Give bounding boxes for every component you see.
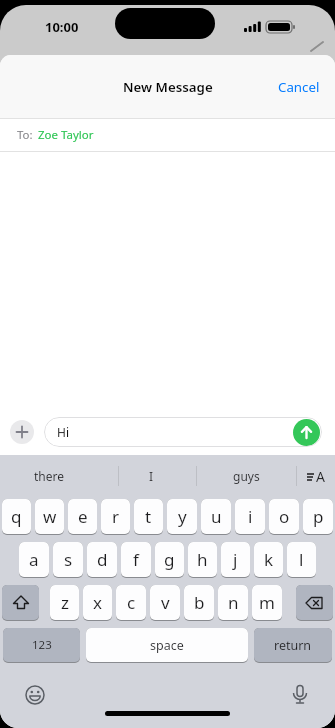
button[interactable]: Cancel (278, 55, 320, 118)
staticText: s (64, 548, 73, 571)
staticText: return (274, 637, 312, 654)
button[interactable]: l (287, 542, 316, 577)
button[interactable]: return (254, 628, 332, 662)
button[interactable]: c (116, 585, 146, 620)
staticText: i (248, 505, 253, 528)
staticText: v (161, 591, 170, 614)
staticText: 10:00 (45, 18, 79, 36)
staticText: New Message (123, 78, 213, 96)
staticText: c (127, 591, 136, 614)
staticText: o (279, 505, 290, 528)
button[interactable]: b (184, 585, 214, 620)
staticText: space (150, 637, 184, 654)
button[interactable] (2, 585, 39, 620)
button[interactable]: r (101, 499, 130, 534)
staticText: n (228, 591, 239, 614)
staticText: q (11, 505, 22, 528)
staticText: A (316, 467, 325, 486)
staticText: m (259, 591, 275, 614)
staticText: guys (233, 468, 260, 484)
button[interactable]: 123 (3, 628, 80, 662)
button[interactable]: A (297, 455, 335, 497)
staticText: e (78, 505, 88, 528)
button[interactable]: To: (0, 119, 335, 151)
staticText: w (43, 505, 57, 528)
button[interactable] (293, 419, 320, 446)
staticText: p (313, 505, 324, 528)
staticText: 123 (32, 637, 52, 653)
button[interactable]: s (53, 542, 83, 577)
button[interactable]: p (303, 499, 333, 534)
staticText: k (264, 548, 274, 571)
button[interactable]: m (252, 585, 282, 620)
button[interactable] (24, 684, 46, 706)
button[interactable]: q (2, 499, 31, 534)
button[interactable]: y (167, 499, 197, 534)
button[interactable] (296, 585, 333, 620)
button[interactable]: h (188, 542, 217, 577)
button[interactable]: u (201, 499, 231, 534)
button[interactable]: x (83, 585, 112, 620)
staticText: r (112, 505, 120, 528)
button[interactable]: guys (197, 455, 296, 497)
staticText: h (197, 548, 208, 571)
button[interactable]: e (68, 499, 97, 534)
staticText: j (233, 548, 238, 571)
button[interactable]: space (86, 628, 248, 662)
button[interactable]: i (235, 499, 265, 534)
staticText: b (194, 591, 205, 614)
staticText: Zoe Taylor (38, 127, 94, 143)
button[interactable]: t (134, 499, 163, 534)
staticText: there (34, 468, 65, 484)
button[interactable]: j (221, 542, 250, 577)
staticText: u (211, 505, 222, 528)
button[interactable]: o (269, 499, 299, 534)
button[interactable]: k (254, 542, 283, 577)
button[interactable]: Hi (44, 417, 322, 447)
button[interactable]: v (150, 585, 180, 620)
staticText: x (93, 591, 102, 614)
staticText: y (178, 505, 187, 528)
button[interactable]: z (50, 585, 79, 620)
staticText: g (164, 548, 175, 571)
staticText: To: (17, 127, 33, 143)
button[interactable]: a (19, 542, 49, 577)
staticText: f (133, 548, 139, 571)
staticText: I (149, 468, 154, 484)
staticText: a (29, 548, 39, 571)
staticText: Hi (57, 424, 69, 440)
button[interactable]: there (0, 455, 118, 497)
staticText: l (299, 548, 304, 571)
button[interactable]: w (35, 499, 64, 534)
staticText: z (61, 591, 69, 614)
button[interactable]: g (155, 542, 184, 577)
staticText: d (97, 548, 108, 571)
button[interactable] (10, 420, 34, 444)
staticText: Cancel (278, 78, 320, 96)
button[interactable]: I (119, 455, 196, 497)
button[interactable]: n (218, 585, 248, 620)
button[interactable] (289, 684, 311, 706)
button[interactable]: f (121, 542, 151, 577)
button[interactable]: d (87, 542, 117, 577)
staticText: t (145, 505, 152, 528)
